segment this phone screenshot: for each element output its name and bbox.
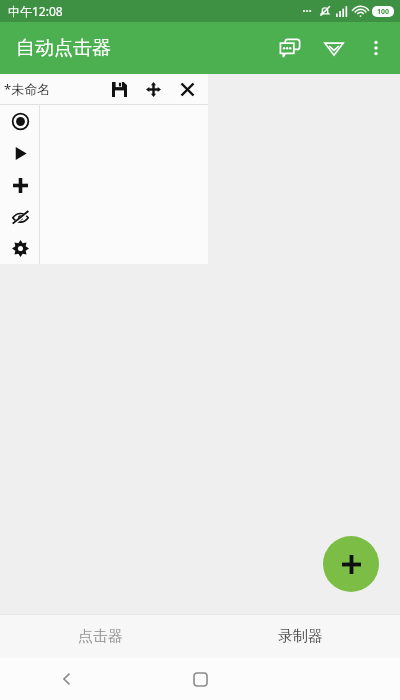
button[interactable]: Add action [4,169,36,201]
button[interactable]: Record [4,105,36,137]
button[interactable]: Settings [4,233,36,264]
staticText: 100 [377,7,390,17]
staticText: *未命名 [4,80,51,98]
button[interactable]: Back [0,658,134,700]
button[interactable]: VIP [312,26,356,70]
button[interactable]: Play [4,137,36,169]
staticText: 点击器 [78,627,123,646]
staticText: 中午12:08 [8,3,63,19]
button[interactable]: Hide [4,201,36,233]
button[interactable]: Feedback [268,26,312,70]
button[interactable]: Save [108,78,130,100]
button[interactable]: More options [356,28,396,68]
button[interactable]: Move [142,78,164,100]
button[interactable]: Close [176,78,198,100]
button[interactable]: Add [323,536,379,592]
staticText: 自动点击器 [16,36,111,60]
button[interactable]: 点击器 [0,614,200,658]
staticText: 录制器 [278,627,323,646]
button[interactable]: Home [134,658,267,700]
button[interactable]: 录制器 [200,614,400,658]
